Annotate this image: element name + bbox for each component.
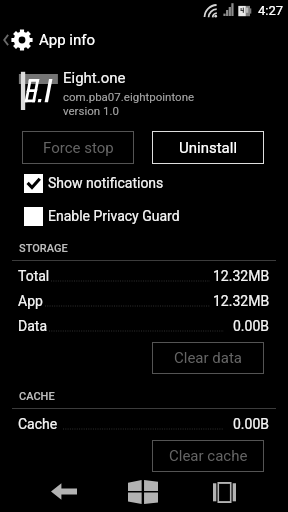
staticText: Uninstall [179, 139, 238, 157]
staticText: Show notifications [48, 175, 164, 191]
staticText: Eight.one [63, 69, 126, 87]
staticText: 12.32MB [213, 268, 270, 284]
button[interactable]: App info [0, 23, 288, 57]
staticText: Force stop [43, 139, 114, 157]
button[interactable]: Enable Privacy Guard [24, 204, 264, 228]
button[interactable]: Uninstall [152, 131, 264, 164]
staticText: Enable Privacy Guard [48, 208, 180, 224]
staticText: CACHE [19, 390, 55, 403]
staticText: 12.32MB [213, 293, 270, 309]
staticText: Clear cache [169, 447, 248, 465]
staticText: Data [18, 318, 47, 334]
button[interactable]: Clear data [152, 342, 264, 374]
button[interactable]: Show notifications [24, 171, 264, 195]
staticText: version 1.0 [63, 104, 119, 117]
staticText: 0.00B [233, 318, 270, 334]
button[interactable]: Force stop [22, 131, 134, 164]
staticText: 0.00B [233, 416, 270, 432]
staticText: App info [39, 31, 96, 49]
staticText: 4:27 [258, 3, 284, 18]
staticText: App [18, 293, 43, 309]
staticText: Clear data [174, 349, 243, 367]
staticText: STORAGE [19, 242, 68, 255]
staticText: Cache [18, 416, 58, 432]
button[interactable]: Back [40, 467, 88, 512]
staticText: Total [18, 268, 50, 284]
button[interactable]: Home [119, 468, 167, 512]
staticText: com.pba07.eightpointone [63, 90, 195, 103]
button[interactable]: Clear cache [152, 440, 264, 472]
button[interactable]: Recents [200, 468, 248, 512]
